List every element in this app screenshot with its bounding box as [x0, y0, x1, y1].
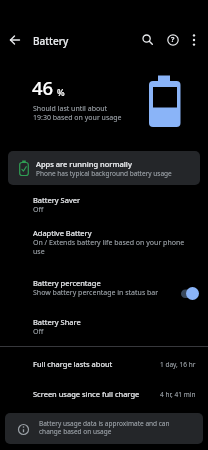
button[interactable]: Apps are running normally — [8, 151, 200, 185]
button[interactable]: Adaptive Battery — [0, 224, 208, 264]
button[interactable]: Battery Saver — [0, 191, 208, 222]
staticText: ? — [171, 35, 175, 45]
staticText: Adaptive Battery — [33, 228, 92, 238]
button[interactable]: Battery Share — [0, 313, 208, 343]
button[interactable]: Screen usage since full charge — [0, 382, 208, 408]
button[interactable]: Battery percentage — [0, 274, 208, 305]
staticText: Off — [33, 205, 44, 215]
button[interactable] — [138, 30, 158, 50]
staticText: Off — [33, 327, 44, 337]
staticText: 19:30 based on your usage — [33, 113, 122, 123]
staticText: On / Extends battery life based on your … — [33, 238, 185, 256]
staticText: Phone has typical background battery usa… — [36, 169, 172, 178]
staticText: Apps are running normally — [36, 159, 132, 169]
staticText: change based on usage — [39, 427, 112, 436]
staticText: Battery Share — [33, 317, 81, 327]
button[interactable]: ? — [163, 30, 183, 50]
staticText: 1 day, 16 hr — [160, 360, 196, 369]
staticText: Battery — [33, 34, 69, 48]
button[interactable] — [5, 30, 25, 50]
staticText: Full charge lasts about — [33, 359, 113, 369]
staticText: 46 — [32, 75, 54, 100]
staticText: Should last until about — [33, 104, 108, 114]
staticText: Battery Saver — [33, 195, 81, 205]
staticText: 4 hr, 41 min — [160, 390, 196, 399]
button[interactable]: Full charge lasts about — [0, 352, 208, 378]
staticText: Battery percentage — [33, 278, 101, 288]
staticText: Screen usage since full charge — [33, 389, 140, 399]
staticText: Battery usage data is approximate and ca… — [39, 419, 170, 428]
staticText: Show battery percentage in status bar — [33, 288, 159, 298]
staticText: % — [57, 86, 65, 98]
button[interactable] — [186, 30, 202, 50]
